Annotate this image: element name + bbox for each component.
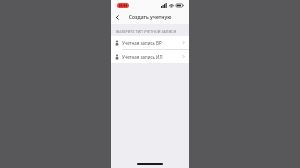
button[interactable]: Учетная запись ИЛ — [111, 50, 189, 63]
staticText: ВЫБЕРИТЕ ТИП УЧЕТНОЙ ЗАПИСИ — [116, 29, 177, 34]
button[interactable]: Учетная запись ВР — [111, 36, 189, 49]
button[interactable]: Назад — [111, 11, 123, 23]
staticText: Создать учетную запись — [122, 14, 178, 21]
staticText: Учетная запись ИЛ — [122, 54, 182, 60]
staticText: Учетная запись ВР — [122, 40, 182, 46]
